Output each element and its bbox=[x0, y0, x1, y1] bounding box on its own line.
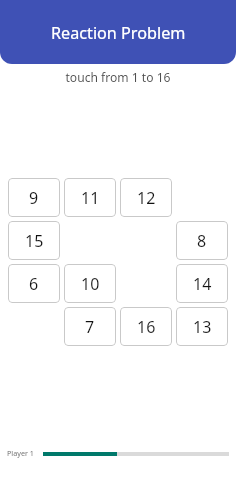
staticText: Player 1 bbox=[7, 448, 34, 458]
staticText: 14 bbox=[193, 273, 212, 295]
button[interactable]: 9 bbox=[8, 178, 60, 217]
staticText: 13 bbox=[193, 316, 212, 338]
button[interactable]: 7 bbox=[64, 307, 116, 346]
other: Player 1 progress bbox=[43, 452, 229, 456]
button[interactable]: 10 bbox=[64, 264, 116, 303]
staticText: touch from 1 to 16 bbox=[0, 69, 236, 85]
staticText: Reaction Problem bbox=[51, 22, 186, 44]
staticText: 15 bbox=[25, 230, 44, 252]
staticText: 12 bbox=[137, 187, 156, 209]
button[interactable]: 12 bbox=[120, 178, 172, 217]
staticText: 6 bbox=[29, 273, 39, 295]
button[interactable]: 13 bbox=[176, 307, 228, 346]
button[interactable]: 14 bbox=[176, 264, 228, 303]
staticText: 8 bbox=[197, 230, 207, 252]
staticText: 7 bbox=[85, 316, 95, 338]
button[interactable]: Reaction Problem bbox=[0, 0, 236, 64]
button[interactable]: 16 bbox=[120, 307, 172, 346]
staticText: 9 bbox=[29, 187, 39, 209]
staticText: 16 bbox=[137, 316, 156, 338]
button[interactable]: 8 bbox=[176, 221, 228, 260]
staticText: 10 bbox=[81, 273, 100, 295]
button[interactable]: 6 bbox=[8, 264, 60, 303]
button[interactable]: 11 bbox=[64, 178, 116, 217]
button[interactable]: 15 bbox=[8, 221, 60, 260]
staticText: 11 bbox=[81, 187, 100, 209]
